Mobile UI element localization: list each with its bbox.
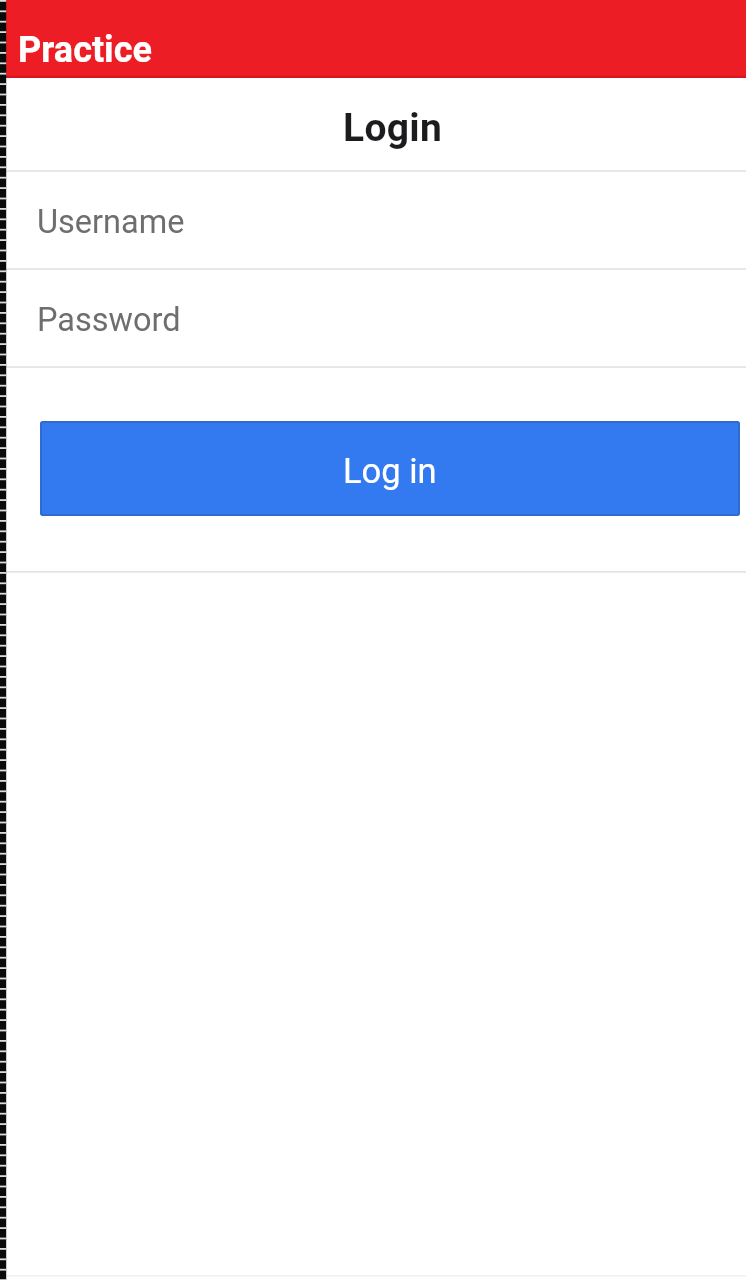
staticText: Password: [37, 301, 181, 339]
other: Screen edge: [0, 0, 746, 1280]
staticText: Practice: [18, 29, 152, 71]
staticText: Log in: [343, 451, 437, 491]
button[interactable]: Password: [0, 269, 746, 366]
staticText: Username: [37, 203, 185, 241]
button[interactable]: Log in: [40, 421, 740, 516]
button[interactable]: Username: [0, 171, 746, 268]
button[interactable]: Practice: [0, 0, 746, 78]
staticText: Login: [343, 105, 443, 151]
